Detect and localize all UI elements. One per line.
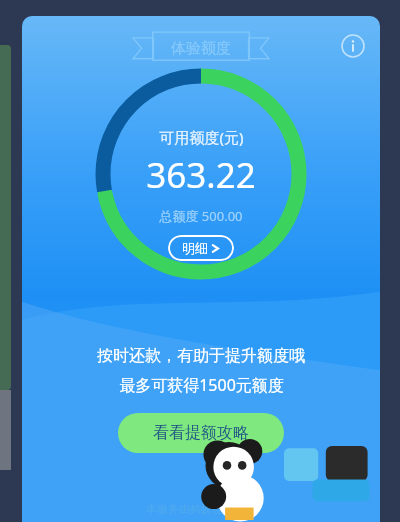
staticText: 最多可获得1500元额度: [119, 374, 284, 396]
staticText: 明细: [182, 240, 208, 256]
staticText: 体验额度: [171, 39, 231, 58]
button[interactable]: Info: [339, 32, 367, 60]
staticText: 363.22: [146, 151, 256, 199]
staticText: 按时还款，有助于提升额度哦: [97, 346, 305, 366]
staticText: 可用额度(元): [159, 127, 244, 147]
staticText: 看看提额攻略: [153, 423, 249, 443]
staticText: 总额度 500.00: [159, 207, 243, 225]
button[interactable]: 看看提额攻略: [118, 413, 284, 453]
button[interactable]: 明细: [168, 235, 234, 261]
staticText: 本服务由蚂蚁金服提供: [146, 502, 256, 516]
